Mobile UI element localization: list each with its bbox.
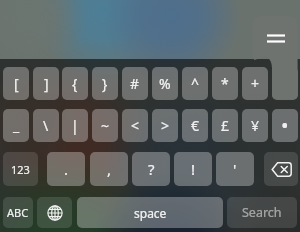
staticText: <: [131, 116, 140, 135]
button[interactable]: _: [3, 109, 29, 142]
staticText: ^: [191, 74, 200, 93]
button[interactable]: ?: [132, 152, 170, 186]
staticText: *: [221, 74, 229, 93]
staticText: !: [191, 159, 196, 179]
staticText: .: [64, 159, 69, 179]
staticText: €: [191, 116, 200, 135]
staticText: }: [102, 74, 108, 93]
button[interactable]: [: [3, 67, 29, 100]
button[interactable]: ,: [90, 152, 128, 186]
staticText: ~: [101, 116, 110, 135]
button[interactable]: €: [182, 109, 208, 142]
staticText: #: [130, 74, 140, 93]
button[interactable]: <: [122, 109, 148, 142]
button[interactable]: #: [122, 67, 148, 100]
button[interactable]: {: [62, 67, 88, 100]
staticText: ,: [107, 159, 112, 179]
staticText: [: [14, 74, 19, 93]
staticText: •: [281, 112, 289, 139]
button[interactable]: space: [77, 197, 223, 228]
button[interactable]: Search: [227, 197, 297, 228]
staticText: ABC: [7, 205, 29, 220]
button[interactable]: >: [152, 109, 178, 142]
staticText: £: [221, 116, 230, 135]
button[interactable]: .: [47, 152, 85, 186]
staticText: \: [43, 116, 49, 135]
button[interactable]: %: [152, 67, 178, 100]
staticText: Search: [242, 204, 282, 221]
button[interactable]: £: [212, 109, 238, 142]
staticText: {: [72, 74, 78, 93]
button[interactable]: =: [272, 67, 298, 100]
button[interactable]: •: [272, 109, 298, 142]
button[interactable]: |: [62, 109, 88, 142]
button[interactable]: ^: [182, 67, 208, 100]
button[interactable]: Switch keyboard language: [37, 197, 72, 228]
button[interactable]: ]: [33, 67, 59, 100]
button[interactable]: ¥: [242, 109, 268, 142]
staticText: ': [233, 159, 237, 179]
button[interactable]: 123: [3, 152, 38, 186]
staticText: +: [251, 74, 260, 93]
staticText: %: [159, 74, 171, 93]
staticText: space: [134, 205, 167, 221]
staticText: _: [13, 116, 20, 135]
button[interactable]: ~: [92, 109, 118, 142]
staticText: ?: [148, 159, 155, 179]
button[interactable]: *: [212, 67, 238, 100]
staticText: >: [161, 116, 170, 135]
button[interactable]: \: [33, 109, 59, 142]
button[interactable]: ABC: [3, 197, 33, 228]
button[interactable]: ': [216, 152, 254, 186]
staticText: ]: [44, 74, 49, 93]
button[interactable]: +: [242, 67, 268, 100]
staticText: ¥: [251, 116, 260, 135]
button[interactable]: Backspace: [264, 152, 298, 186]
button[interactable]: }: [92, 67, 118, 100]
staticText: 123: [11, 162, 30, 177]
button[interactable]: !: [174, 152, 212, 186]
staticText: |: [71, 116, 79, 135]
